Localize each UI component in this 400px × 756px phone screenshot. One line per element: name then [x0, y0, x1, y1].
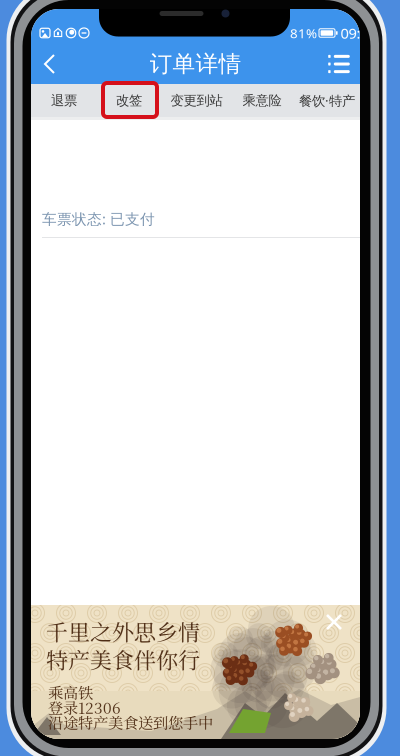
button[interactable]: 变更到站	[163, 84, 229, 117]
staticText: 订单详情	[149, 50, 241, 78]
button[interactable]: 退票	[31, 84, 97, 117]
staticText: 沿途特产美食送到您手中	[48, 711, 213, 733]
staticText: 餐饮·特产	[299, 92, 355, 109]
staticText: 车票状态: 已支付	[42, 209, 155, 228]
button[interactable]: 餐饮·特产	[294, 84, 360, 117]
staticText: 改签	[116, 92, 142, 109]
staticText: 81%	[290, 24, 317, 42]
staticText: 乘意险	[242, 92, 281, 109]
staticText: 登录12306	[48, 696, 121, 718]
button[interactable]: Close advertisement	[321, 609, 347, 635]
button[interactable]: 乘意险	[229, 84, 295, 117]
button[interactable]: Menu	[321, 46, 357, 82]
staticText: 退票	[51, 92, 77, 109]
staticText: 09:2	[341, 23, 369, 43]
staticText: 乘高铁	[48, 681, 93, 703]
staticText: 特产美食伴你行	[46, 643, 200, 675]
staticText: 千里之外思乡情	[46, 615, 200, 647]
button[interactable]: 改签	[96, 84, 162, 117]
button[interactable]: Back	[32, 46, 68, 82]
staticText: 变更到站	[170, 92, 222, 109]
